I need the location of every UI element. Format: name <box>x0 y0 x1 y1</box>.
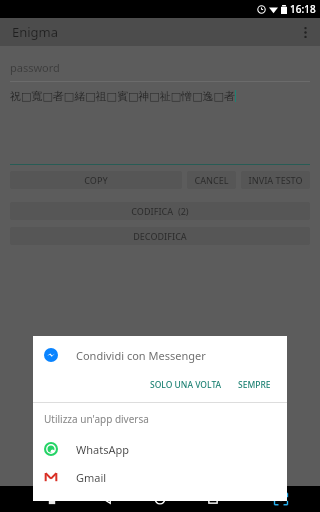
staticText: INVIA TESTO <box>248 174 303 186</box>
button[interactable]: Home <box>151 490 169 508</box>
staticText: 祝□寬□者□緒□祖□賓□神□祉□憎□逸□者 <box>10 89 235 103</box>
button[interactable]: WhatsApp <box>33 435 287 463</box>
staticText: SOLO UNA VOLTA <box>150 379 222 391</box>
staticText: Gmail <box>76 470 107 485</box>
staticText: CANCEL <box>194 174 229 186</box>
button[interactable]: SEMPRE <box>232 374 277 396</box>
button[interactable]: Recent apps <box>204 490 222 508</box>
staticText: Condividi con Messenger <box>76 348 206 363</box>
button[interactable]: Back <box>98 490 116 508</box>
button[interactable]: Gmail <box>33 463 287 491</box>
staticText: Utilizza un'app diversa <box>44 412 149 426</box>
staticText: password <box>10 60 60 75</box>
staticText: WhatsApp <box>76 442 129 457</box>
button[interactable]: Screenshot <box>272 490 290 508</box>
button[interactable]: Condividi con Messenger <box>33 336 287 374</box>
staticText: 16:18 <box>290 2 316 16</box>
button[interactable]: SOLO UNA VOLTA <box>144 374 228 396</box>
button[interactable]: INVIA TESTO <box>241 171 310 189</box>
button[interactable]: More options <box>290 18 320 46</box>
button[interactable]: COPY <box>10 171 182 189</box>
staticText: SEMPRE <box>238 379 271 391</box>
staticText: COPY <box>84 174 108 186</box>
staticText: CODIFICA (2) <box>131 205 189 217</box>
button[interactable]: DECODIFICA <box>10 227 310 245</box>
button[interactable]: CANCEL <box>187 171 236 189</box>
staticText: DECODIFICA <box>133 230 187 242</box>
button[interactable]: CODIFICA (2) <box>10 202 310 220</box>
staticText: Enigma <box>12 23 59 41</box>
button[interactable]: Keyboard <box>44 491 60 507</box>
